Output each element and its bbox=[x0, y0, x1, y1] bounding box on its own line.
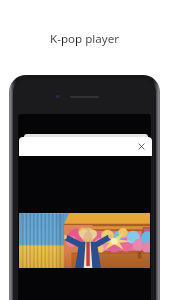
staticText: K-pop player bbox=[0, 31, 169, 47]
button[interactable]: Close advertisement bbox=[136, 141, 147, 152]
button[interactable]: Close advertisement bbox=[19, 137, 152, 156]
